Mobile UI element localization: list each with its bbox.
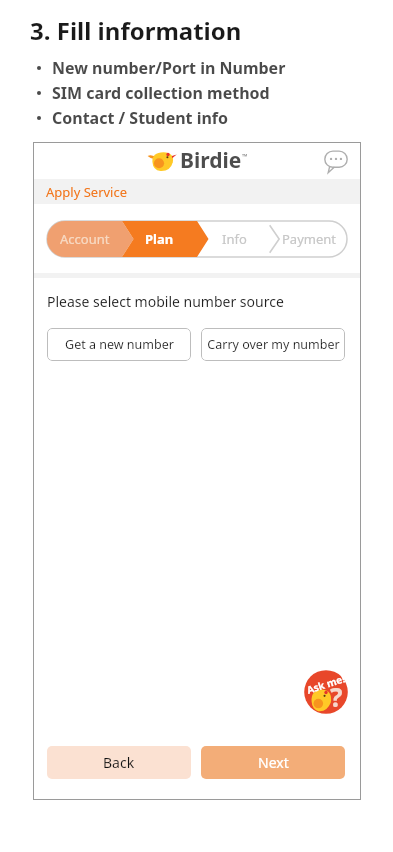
staticText: ™: [242, 152, 248, 162]
staticText: ?: [330, 679, 343, 714]
button[interactable]: Info: [197, 221, 272, 257]
staticText: Please select mobile number source: [47, 292, 284, 311]
button[interactable]: Plan: [122, 221, 197, 257]
button[interactable]: Get a new number: [47, 328, 191, 361]
button[interactable]: Next: [201, 746, 345, 779]
staticText: Next: [258, 753, 289, 772]
button[interactable]: Ask me: [302, 668, 350, 716]
staticText: Get a new number: [65, 336, 174, 353]
staticText: Ask me!: [305, 671, 347, 697]
staticText: SIM card collection method: [52, 82, 270, 104]
staticText: Apply Service: [46, 183, 128, 201]
staticText: Carry over my number: [207, 336, 340, 353]
staticText: Back: [103, 753, 135, 772]
staticText: Plan: [145, 230, 174, 248]
staticText: 3. Fill information: [30, 14, 242, 47]
staticText: Payment: [282, 230, 337, 248]
button[interactable]: Back: [47, 746, 191, 779]
staticText: Account: [60, 230, 110, 248]
staticText: Info: [222, 230, 247, 248]
button[interactable]: Payment: [272, 221, 347, 257]
staticText: Birdie: [180, 146, 242, 175]
staticText: New number/Port in Number: [52, 57, 286, 79]
button[interactable]: Chat: [323, 148, 349, 174]
staticText: Contact / Student info: [52, 107, 229, 129]
button[interactable]: Account: [47, 221, 122, 257]
button[interactable]: Carry over my number: [201, 328, 345, 361]
